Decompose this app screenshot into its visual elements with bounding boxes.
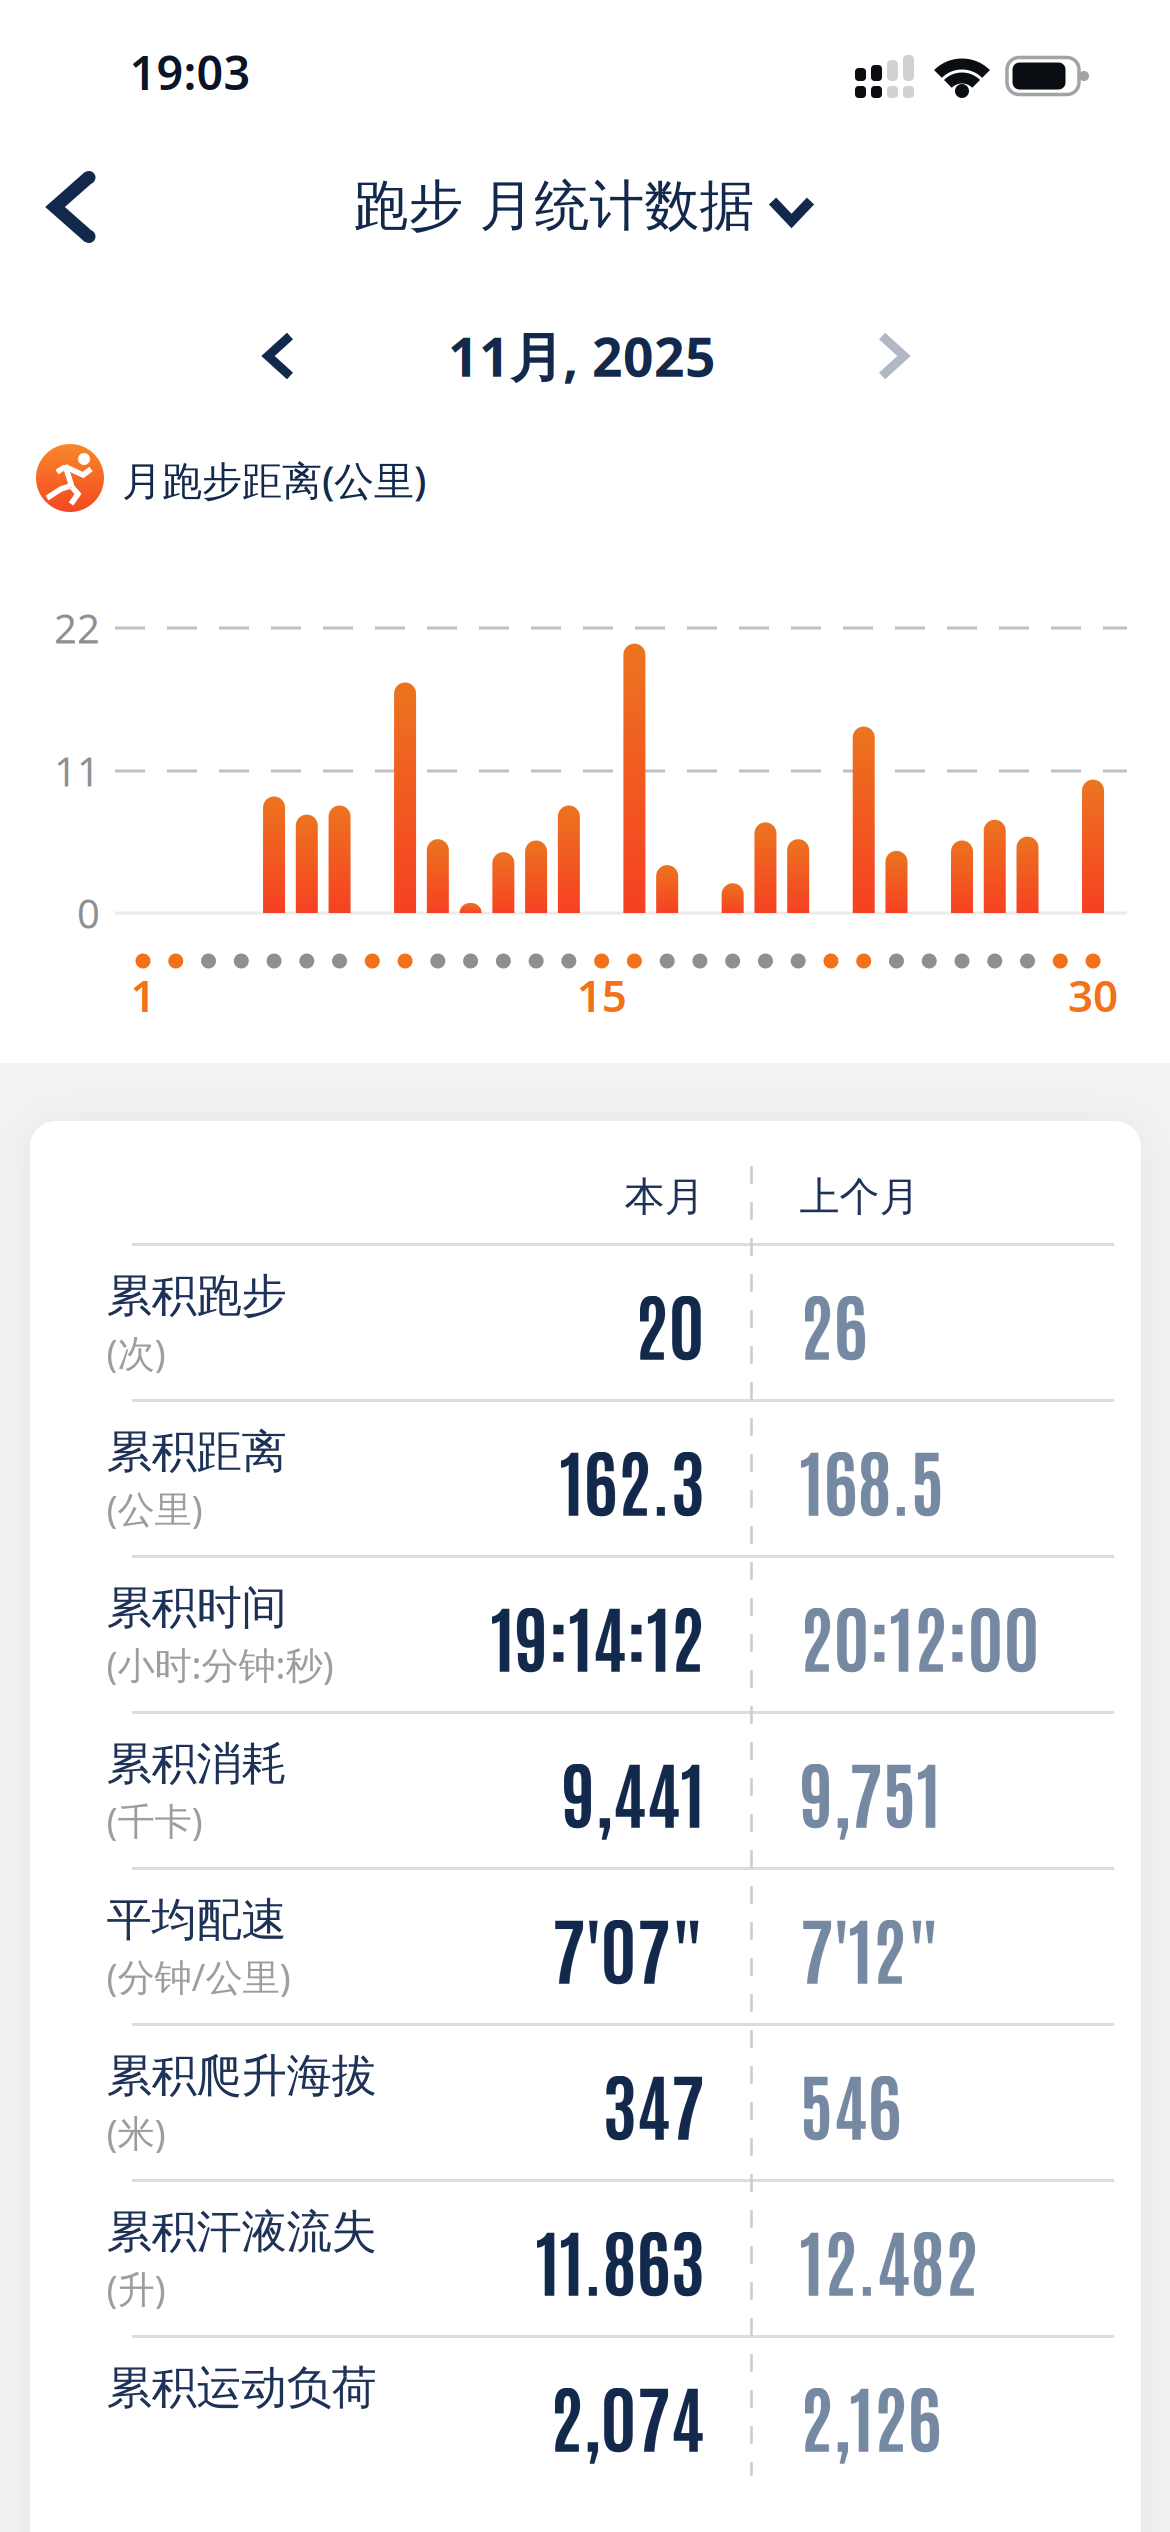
staticText: 累积爬升海拔 (106, 2048, 376, 2104)
button[interactable]: Back (33, 163, 111, 251)
staticText: 累积跑步 (106, 1268, 286, 1324)
staticText: 月跑步距离(公里) (122, 453, 426, 506)
staticText: (千卡) (106, 1796, 202, 1845)
staticText: 7'07" (551, 1899, 704, 1994)
staticText: 30 (1068, 966, 1118, 1024)
staticText: 168.5 (799, 1431, 944, 1526)
button[interactable]: Previous month (248, 316, 310, 396)
staticText: 20:12:00 (799, 1587, 1039, 1682)
staticText: (分钟/公里) (106, 1952, 290, 2001)
staticText: 347 (602, 2055, 704, 2150)
staticText: 7'12" (799, 1899, 940, 1994)
staticText: 1 (130, 966, 155, 1024)
staticText: 累积时间 (106, 1580, 286, 1636)
staticText: 19:03 (129, 41, 250, 103)
staticText: 9,751 (799, 1743, 940, 1838)
staticText: 26 (799, 1275, 867, 1370)
button[interactable]: Next month (862, 316, 924, 396)
staticText: 546 (799, 2055, 901, 2150)
staticText: (次) (106, 1328, 165, 1377)
staticText: 本月 (624, 1172, 704, 1221)
staticText: 12.482 (799, 2211, 978, 2306)
staticText: 11.863 (535, 2211, 704, 2306)
staticText: 2,074 (549, 2367, 704, 2462)
staticText: 上个月 (799, 1172, 919, 1221)
staticText: 11月, 2025 (448, 321, 716, 391)
staticText: (公里) (106, 1484, 202, 1533)
staticText: 9,441 (561, 1743, 704, 1838)
staticText: 跑步 月统计数据 (353, 172, 754, 239)
staticText: 累积消耗 (106, 1736, 286, 1792)
staticText: 累积距离 (106, 1424, 286, 1480)
staticText: (小时:分钟:秒) (106, 1640, 333, 1689)
staticText: 20 (634, 1275, 704, 1370)
staticText: 162.3 (559, 1431, 704, 1526)
staticText: 累积汗液流失 (106, 2204, 376, 2260)
staticText: 2,126 (799, 2367, 941, 2462)
staticText: (米) (106, 2108, 165, 2157)
staticText: 15 (577, 966, 627, 1024)
button[interactable]: 跑步 月统计数据 (353, 172, 810, 239)
staticText: 22 (54, 601, 100, 654)
staticText: 平均配速 (106, 1892, 286, 1948)
staticText: 19:14:12 (490, 1587, 704, 1682)
staticText: 11 (54, 744, 100, 797)
staticText: 0 (77, 886, 100, 939)
staticText: 累积运动负荷 (106, 2360, 376, 2416)
staticText: (升) (106, 2264, 165, 2313)
